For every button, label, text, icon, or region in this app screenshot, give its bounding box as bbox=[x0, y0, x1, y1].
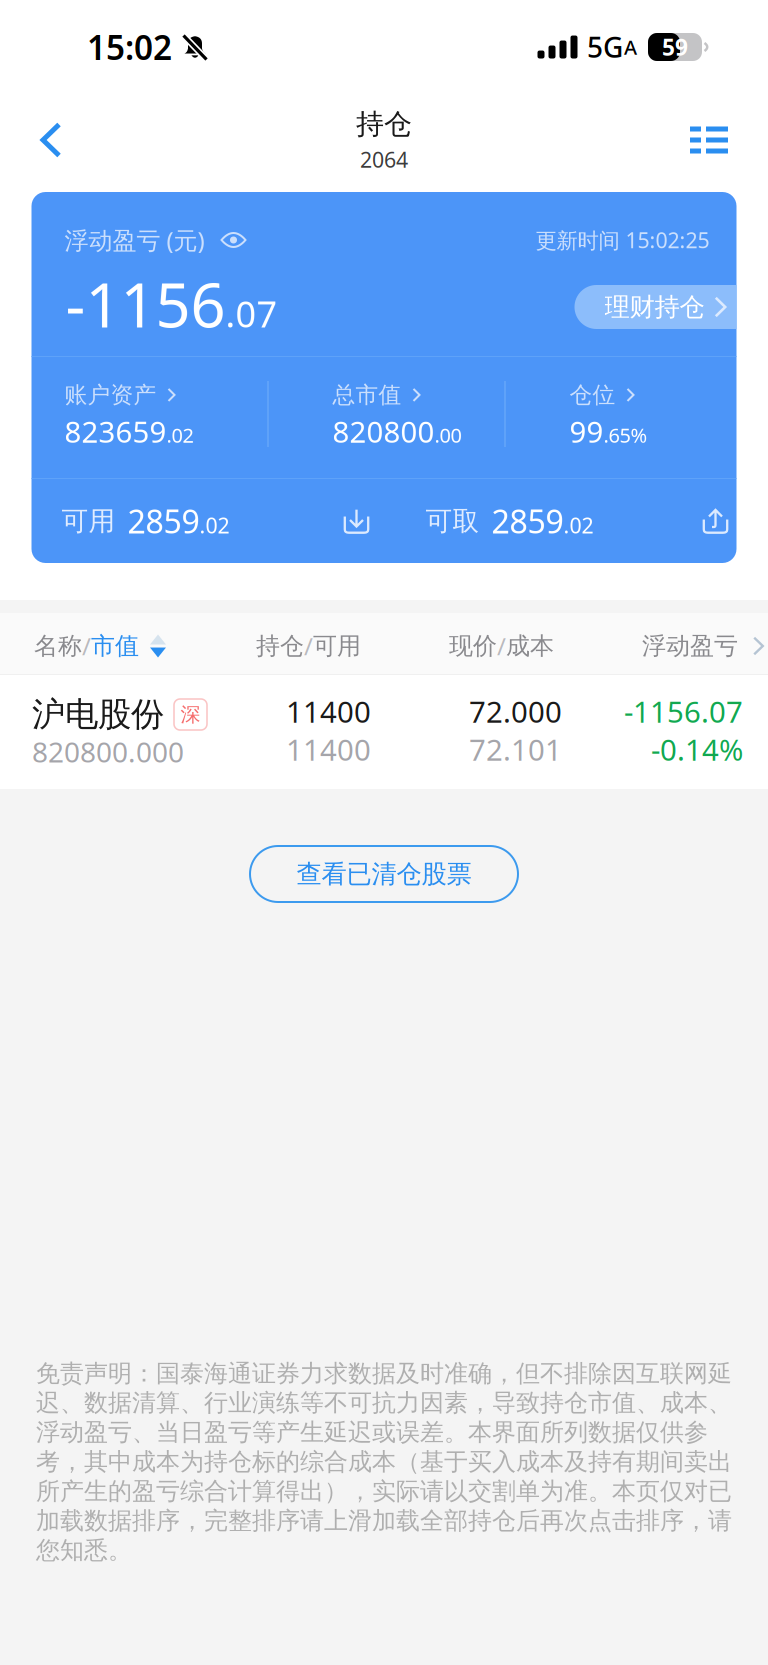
button[interactable]: 总市值 bbox=[332, 381, 461, 451]
button[interactable]: 查看已清仓股票 bbox=[250, 846, 518, 902]
staticText: .02 bbox=[166, 422, 193, 448]
button[interactable]: 现价 bbox=[449, 620, 554, 672]
button[interactable]: List view bbox=[668, 106, 750, 173]
staticText: 成本 bbox=[506, 631, 554, 661]
staticText: 2859 bbox=[483, 500, 563, 542]
button[interactable]: Withdraw bbox=[690, 498, 740, 544]
staticText: 823659 bbox=[64, 412, 166, 451]
staticText: .02 bbox=[199, 511, 229, 539]
button[interactable]: 账户资产 bbox=[64, 381, 193, 451]
staticText: 持仓 bbox=[356, 107, 412, 141]
staticText: 总市值 bbox=[332, 381, 401, 409]
staticText: .00 bbox=[434, 422, 461, 448]
staticText: 11400 bbox=[286, 730, 371, 769]
staticText: 可取 bbox=[425, 505, 479, 537]
button[interactable]: Deposit bbox=[331, 498, 381, 544]
staticText: 59 bbox=[662, 32, 688, 62]
staticText: 持仓 bbox=[256, 631, 304, 661]
staticText: 现价 bbox=[449, 631, 497, 661]
staticText: 72.000 bbox=[469, 692, 562, 731]
staticText: 理财持仓 bbox=[604, 291, 704, 322]
staticText: 更新时间 15:02:25 bbox=[535, 226, 709, 254]
button[interactable]: 持仓 bbox=[256, 620, 361, 672]
staticText: 查看已清仓股票 bbox=[296, 858, 471, 889]
staticText: 沪电股份 bbox=[32, 694, 164, 735]
staticText: 820800.000 bbox=[32, 733, 184, 770]
button[interactable]: 沪电股份 bbox=[0, 675, 768, 789]
staticText: 名称 bbox=[34, 631, 82, 661]
staticText: 深 bbox=[180, 702, 200, 727]
staticText: 浮动盈亏 (元) bbox=[64, 224, 204, 256]
staticText: 市值 bbox=[91, 631, 139, 661]
staticText: 可用 bbox=[61, 505, 115, 537]
button[interactable]: Back bbox=[18, 106, 84, 174]
staticText: 99 bbox=[569, 412, 603, 451]
staticText: 可用 bbox=[313, 631, 361, 661]
staticText: -1156 bbox=[65, 263, 225, 344]
staticText: 2064 bbox=[360, 145, 408, 174]
button[interactable]: 仓位 bbox=[569, 381, 647, 451]
staticText: 仓位 bbox=[569, 381, 615, 409]
staticText: 820800 bbox=[332, 412, 434, 451]
staticText: .65% bbox=[603, 422, 647, 448]
staticText: .07 bbox=[225, 290, 277, 337]
staticText: 2859 bbox=[119, 500, 199, 542]
staticText: 15:02 bbox=[87, 25, 172, 69]
staticText: 72.101 bbox=[469, 730, 562, 769]
button[interactable]: 浮动盈亏 bbox=[642, 620, 764, 672]
staticText: 免责声明：国泰海通证券力求数据及时准确，但不排除因互联网延迟、数据清算、行业演练… bbox=[36, 1359, 732, 1565]
button[interactable]: 名称 bbox=[34, 620, 166, 672]
staticText: 账户资产 bbox=[64, 381, 156, 409]
staticText: .02 bbox=[563, 511, 593, 539]
staticText: / bbox=[497, 630, 506, 662]
staticText: A bbox=[624, 34, 637, 60]
staticText: / bbox=[304, 630, 313, 662]
staticText: -0.14% bbox=[651, 730, 743, 769]
staticText: -1156.07 bbox=[624, 692, 743, 731]
button[interactable]: 理财持仓 bbox=[574, 285, 768, 329]
staticText: / bbox=[82, 630, 91, 662]
staticText: 5G bbox=[587, 28, 623, 66]
staticText: 11400 bbox=[286, 692, 371, 731]
staticText: 浮动盈亏 bbox=[642, 631, 738, 661]
